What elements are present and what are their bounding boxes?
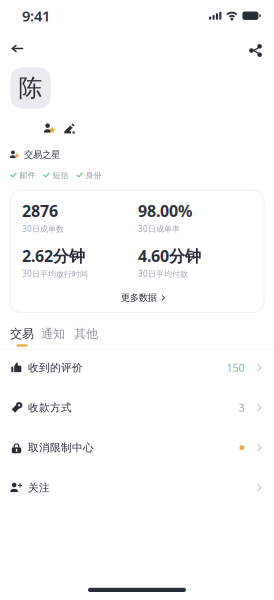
staticText: 98.00% <box>138 200 192 221</box>
staticText: 取消限制中心 <box>28 441 94 454</box>
button[interactable]: 收到的评价 <box>0 348 274 388</box>
staticText: 交易 <box>10 326 34 341</box>
button[interactable]: 关注 <box>0 468 274 508</box>
staticText: 身份 <box>85 170 101 180</box>
staticText: 2.62分钟 <box>22 245 85 266</box>
staticText: 邮件 <box>19 170 35 180</box>
button[interactable]: Share <box>235 40 274 61</box>
button[interactable]: 收款方式 <box>0 388 274 428</box>
staticText: 其他 <box>74 326 98 341</box>
button[interactable]: 交易 <box>10 326 34 347</box>
staticText: 3 <box>238 401 244 415</box>
staticText: 30日成单数 <box>22 223 64 234</box>
staticText: 交易之星 <box>24 149 60 160</box>
staticText: 150 <box>226 361 244 375</box>
staticText: 4.60分钟 <box>138 245 201 266</box>
staticText: 短信 <box>52 170 68 180</box>
staticText: 30日平均放行时间 <box>22 268 88 279</box>
staticText: 关注 <box>28 481 50 494</box>
staticText: 2876 <box>22 200 58 221</box>
staticText: 收到的评价 <box>28 361 83 374</box>
button[interactable]: 通知 <box>34 326 65 341</box>
staticText: 收款方式 <box>28 401 72 414</box>
button[interactable]: 取消限制中心 <box>0 428 274 468</box>
staticText: 陈 <box>18 73 42 103</box>
staticText: 30日平均付款 <box>138 268 188 279</box>
button[interactable]: 更多数据 <box>22 279 264 312</box>
staticText: 30日成单率 <box>138 223 180 234</box>
staticText: 通知 <box>41 326 65 341</box>
staticText: 9:41 <box>22 6 50 25</box>
button[interactable]: Back <box>0 40 37 61</box>
button[interactable]: 其他 <box>65 326 98 341</box>
staticText: 更多数据 <box>121 292 157 303</box>
